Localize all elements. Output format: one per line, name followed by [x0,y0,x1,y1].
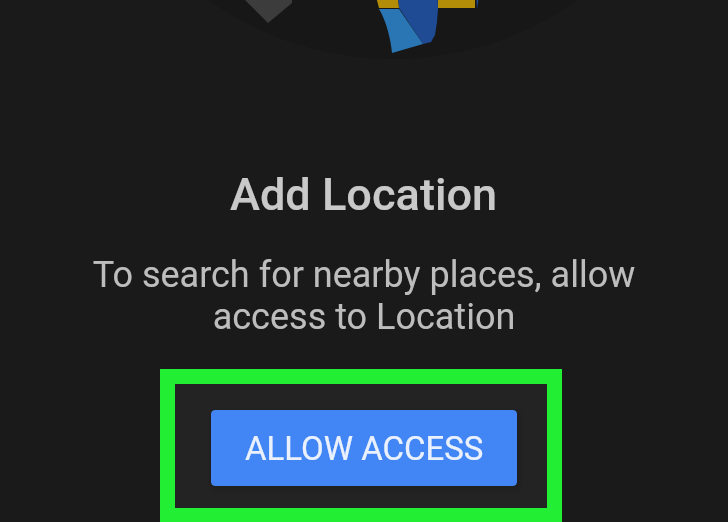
button[interactable]: ALLOW ACCESS [211,410,517,486]
staticText: To search for nearby places, allow acces… [79,254,649,338]
staticText: ALLOW ACCESS [245,429,484,468]
staticText: Add Location [230,168,498,221]
